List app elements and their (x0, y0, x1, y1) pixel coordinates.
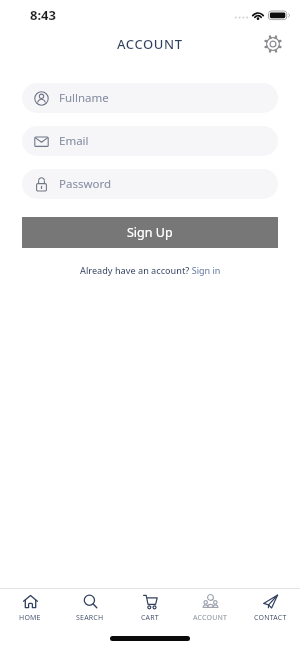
button[interactable]: Password (22, 169, 278, 199)
button[interactable]: Email (22, 126, 278, 156)
button[interactable]: Fullname (22, 83, 278, 113)
staticText: ACCOUNT (117, 35, 183, 53)
button[interactable]: ACCOUNT (180, 589, 240, 628)
button[interactable]: CART (120, 589, 180, 628)
button[interactable] (261, 32, 285, 56)
staticText: Email (59, 133, 89, 149)
staticText: CONTACT (254, 613, 287, 623)
button[interactable]: Sign Up (22, 217, 278, 248)
button[interactable]: HOME (0, 589, 60, 628)
staticText: Fullname (59, 90, 109, 106)
staticText: 8:43 (30, 6, 56, 24)
button[interactable]: CONTACT (240, 589, 300, 628)
staticText: Already have an account? Sign in (80, 264, 221, 276)
staticText: SEARCH (76, 613, 104, 623)
staticText: HOME (19, 613, 41, 623)
button[interactable]: Already have an account? Sign in (0, 264, 300, 276)
staticText: ACCOUNT (193, 613, 228, 623)
staticText: CART (141, 613, 159, 623)
button[interactable]: SEARCH (60, 589, 120, 628)
staticText: Password (59, 176, 112, 192)
staticText: Sign Up (127, 224, 173, 241)
